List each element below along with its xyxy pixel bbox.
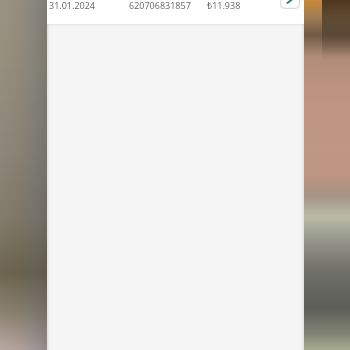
button[interactable]: SİPARİŞ TARİHİ [47, 0, 304, 24]
staticText: 31.01.2024 [49, 0, 96, 11]
staticText: ₺11.938 [207, 0, 241, 11]
staticText: 620706831857 [129, 0, 191, 11]
button[interactable]: Sipariş detayına git [280, 0, 300, 9]
